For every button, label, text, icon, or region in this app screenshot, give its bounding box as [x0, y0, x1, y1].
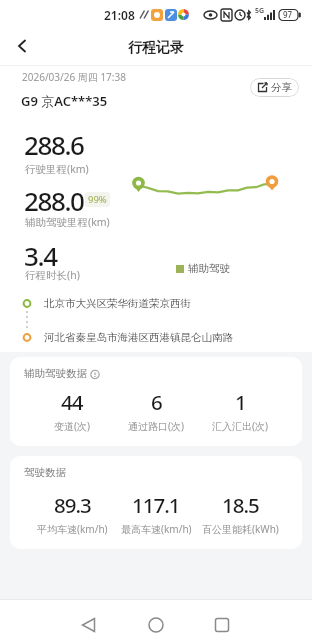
staticText: 驾驶数据: [24, 466, 66, 479]
staticText: 5G: [255, 6, 265, 16]
staticText: 辅助驾驶数据: [24, 367, 87, 380]
staticText: 6: [151, 388, 162, 416]
staticText: 21:08: [104, 7, 135, 23]
staticText: 3.4: [24, 238, 57, 273]
button[interactable]: [8, 32, 36, 60]
staticText: 汇入汇出(次): [212, 419, 268, 433]
staticText: 99%: [88, 193, 107, 206]
button[interactable]: 分享: [250, 78, 299, 97]
staticText: 行程时长(h): [25, 268, 80, 282]
staticText: 变道(次): [54, 419, 90, 433]
staticText: 河北省秦皇岛市海港区西港镇昆仑山南路: [44, 331, 233, 344]
staticText: G9 京AC***35: [21, 92, 108, 110]
staticText: 辅助驾驶里程(km): [25, 215, 110, 229]
staticText: 89.3: [54, 491, 91, 519]
button[interactable]: [208, 600, 312, 644]
staticText: 18.5: [222, 491, 259, 519]
staticText: 288.0: [24, 183, 84, 218]
staticText: 1: [235, 388, 246, 416]
staticText: 最高车速(km/h): [121, 522, 192, 536]
button[interactable]: 辅助驾驶数据: [10, 357, 302, 446]
staticText: 行程记录: [128, 39, 184, 57]
staticText: 平均车速(km/h): [37, 522, 108, 536]
staticText: 北京市大兴区荣华街道荣京西街: [44, 297, 191, 310]
staticText: 2026/03/26 周四 17:38: [22, 70, 126, 84]
staticText: 通过路口(次): [128, 419, 184, 433]
button[interactable]: 驾驶数据: [10, 456, 302, 549]
staticText: 百公里能耗(kWh): [202, 522, 279, 536]
staticText: 44: [61, 388, 83, 416]
staticText: 行驶里程(km): [25, 162, 89, 176]
staticText: 97: [283, 9, 293, 20]
staticText: 117.1: [132, 491, 180, 519]
staticText: 辅助驾驶: [188, 262, 230, 275]
staticText: 288.6: [24, 127, 84, 162]
staticText: 分享: [271, 81, 292, 94]
button[interactable]: [104, 600, 208, 644]
button[interactable]: [0, 600, 104, 644]
